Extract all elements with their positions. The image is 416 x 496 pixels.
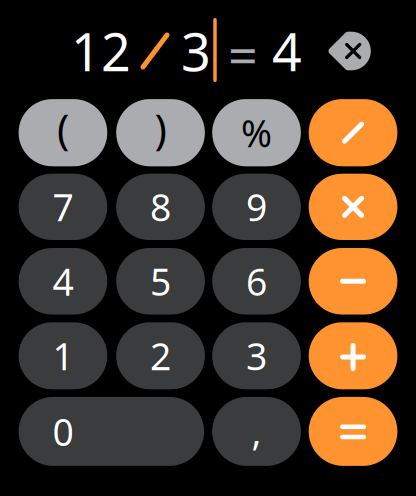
button[interactable]: 7: [19, 174, 107, 240]
staticText: ): [155, 101, 167, 156]
staticText: 9: [246, 182, 267, 232]
staticText: 8: [150, 182, 171, 232]
button[interactable]: ): [116, 99, 205, 166]
staticText: 3: [246, 331, 267, 381]
staticText: 2: [150, 331, 171, 381]
button[interactable]: 3: [212, 322, 301, 389]
staticText: (: [57, 101, 69, 156]
button[interactable]: (: [19, 99, 107, 166]
button[interactable]: Subtract: [309, 248, 397, 314]
button[interactable]: Delete: [328, 30, 372, 72]
button[interactable]: %: [212, 99, 301, 166]
staticText: 1: [52, 331, 73, 381]
button[interactable]: 9: [212, 174, 301, 240]
staticText: 4: [52, 256, 73, 306]
button[interactable]: 4: [19, 248, 107, 314]
staticText: 3: [181, 16, 211, 86]
button[interactable]: 2: [116, 322, 205, 389]
button[interactable]: 6: [212, 248, 301, 314]
button[interactable]: Divide: [309, 99, 397, 166]
button[interactable]: Add: [309, 322, 397, 389]
button[interactable]: Equals: [309, 397, 397, 466]
button[interactable]: 1: [19, 322, 107, 389]
staticText: ,: [252, 406, 262, 456]
staticText: 12: [71, 16, 131, 86]
button[interactable]: 5: [116, 248, 205, 314]
button[interactable]: 0: [19, 397, 204, 466]
staticText: 7: [52, 182, 73, 232]
staticText: 0: [52, 407, 73, 456]
button[interactable]: Decimal separator: [212, 397, 301, 466]
staticText: 4: [272, 16, 302, 86]
staticText: 6: [246, 256, 267, 306]
staticText: %: [241, 108, 272, 157]
button[interactable]: Multiply: [309, 174, 397, 240]
staticText: =: [228, 20, 258, 90]
staticText: 5: [150, 256, 171, 306]
button[interactable]: 8: [116, 174, 205, 240]
